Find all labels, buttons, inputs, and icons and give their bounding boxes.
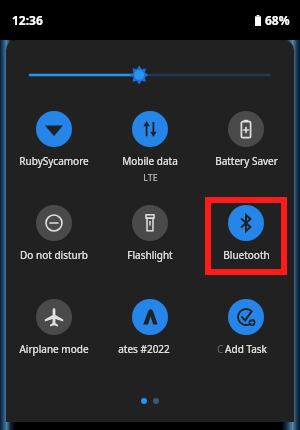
staticText: RubySycamore bbox=[19, 154, 89, 168]
staticText: ates #2022 bbox=[118, 342, 170, 356]
staticText: Do not disturb bbox=[20, 248, 88, 262]
button[interactable]: Battery Saver bbox=[198, 106, 294, 168]
button[interactable]: Do not disturb bbox=[6, 200, 102, 262]
other: ates #2022 bbox=[132, 299, 168, 335]
button[interactable]: RubySycamore bbox=[6, 106, 102, 168]
button[interactable]: Airplane mode bbox=[6, 294, 102, 356]
button[interactable]: Bluetooth bbox=[198, 200, 294, 262]
staticText: Flashlight bbox=[127, 248, 173, 262]
staticText: LTE bbox=[143, 171, 158, 183]
staticText: Mobile data bbox=[122, 154, 178, 168]
other: Do not disturb bbox=[36, 205, 72, 241]
other: Flashlight bbox=[132, 205, 168, 241]
button[interactable]: Page 1 bbox=[141, 398, 147, 404]
button[interactable]: ates #2022 bbox=[102, 294, 198, 356]
button[interactable]: Brightness bbox=[30, 62, 270, 88]
button[interactable]: Add Task bbox=[198, 294, 294, 356]
other: Mobile data bbox=[132, 111, 168, 147]
staticText: 12:36 bbox=[12, 12, 43, 28]
other: Bluetooth bbox=[228, 205, 264, 241]
button[interactable]: Page 2 bbox=[153, 398, 159, 404]
staticText: Battery Saver bbox=[215, 154, 278, 168]
staticText: Add Task bbox=[225, 342, 267, 356]
button[interactable]: Flashlight bbox=[102, 200, 198, 262]
other: RubySycamore bbox=[36, 111, 72, 147]
staticText: Airplane mode bbox=[19, 342, 89, 356]
other: Add Task bbox=[228, 299, 264, 335]
button[interactable]: Mobile data bbox=[102, 106, 198, 183]
other: Battery Saver bbox=[228, 111, 264, 147]
staticText: 68% bbox=[265, 12, 290, 28]
staticText: C bbox=[217, 342, 224, 356]
staticText: Bluetooth bbox=[223, 248, 270, 262]
other: Airplane mode bbox=[36, 299, 72, 335]
